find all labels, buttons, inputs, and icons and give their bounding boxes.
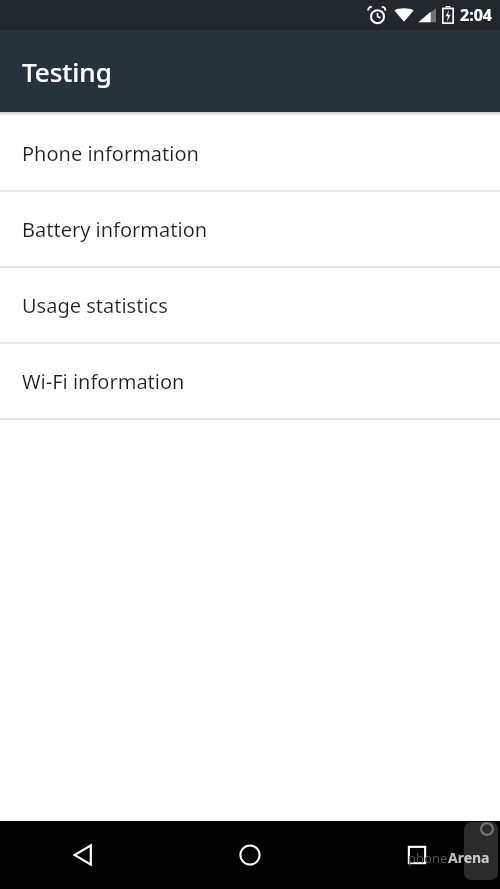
- staticText: Usage statistics: [22, 292, 168, 319]
- button[interactable]: Recents: [333, 821, 500, 889]
- staticText: 2:04: [460, 4, 492, 26]
- button[interactable]: Battery information: [0, 192, 500, 268]
- button[interactable]: Usage statistics: [0, 268, 500, 344]
- staticText: Wi-Fi information: [22, 368, 185, 395]
- button[interactable]: Wi-Fi information: [0, 344, 500, 420]
- staticText: Battery information: [22, 216, 208, 243]
- button[interactable]: Phone information: [0, 116, 500, 192]
- staticText: phone: [408, 849, 448, 867]
- button[interactable]: Back: [0, 821, 166, 889]
- staticText: Testing: [22, 54, 112, 89]
- staticText: Arena: [448, 848, 490, 867]
- button[interactable]: Home: [166, 821, 333, 889]
- staticText: Phone information: [22, 140, 199, 167]
